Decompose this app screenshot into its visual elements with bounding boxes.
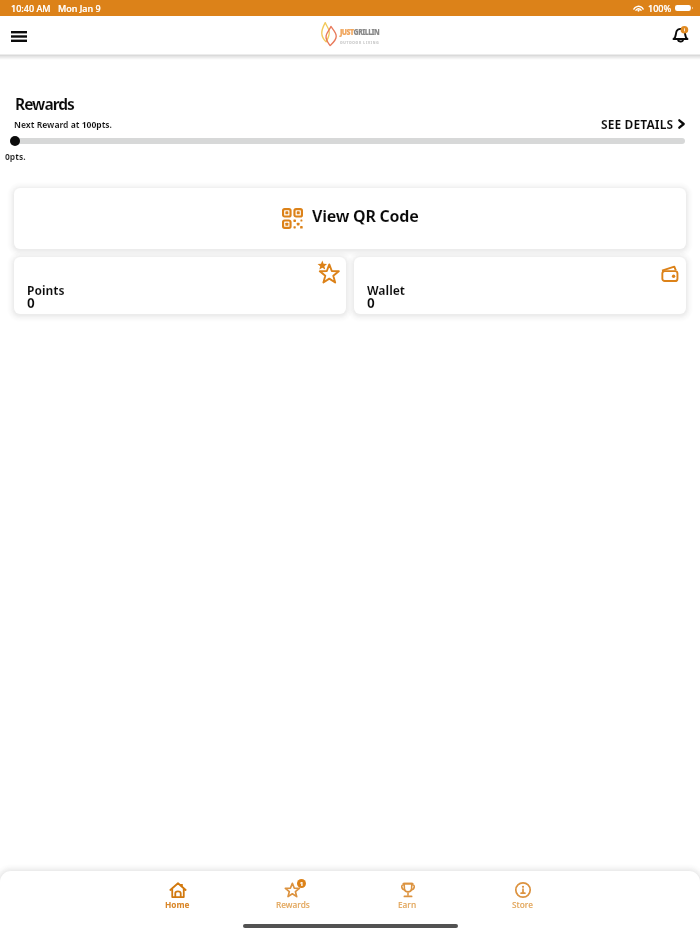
staticText: Points — [27, 282, 65, 298]
staticText: 0pts. — [5, 151, 26, 163]
staticText: Home — [165, 899, 190, 910]
staticText: JUST — [340, 26, 354, 38]
button[interactable]: SEE DETAILS — [599, 113, 687, 135]
staticText: GRILLIN — [354, 26, 380, 38]
staticText: 10:40 AM — [11, 2, 51, 14]
staticText: Rewards — [276, 899, 310, 910]
staticText: Earn — [398, 899, 417, 910]
staticText: OUTDOOR LIVING — [340, 40, 380, 45]
button[interactable]: 1 — [235, 882, 350, 910]
button[interactable]: Menu — [4, 21, 34, 51]
button[interactable]: Earn — [350, 882, 465, 910]
staticText: 100% — [648, 2, 672, 14]
button[interactable]: Notifications — [666, 22, 694, 50]
button[interactable]: View QR Code — [14, 188, 686, 249]
button[interactable]: Home — [120, 882, 235, 910]
staticText: SEE DETAILS — [601, 116, 674, 132]
staticText: 0 — [27, 294, 35, 312]
staticText: Mon Jan 9 — [58, 2, 101, 14]
staticText: Next Reward at 100pts. — [14, 119, 112, 131]
staticText: View QR Code — [312, 205, 419, 227]
button[interactable]: Wallet — [354, 257, 686, 314]
staticText: Wallet — [367, 282, 406, 298]
staticText: Store — [512, 899, 533, 910]
staticText: 0 — [367, 294, 375, 312]
button[interactable]: Points — [14, 257, 346, 314]
staticText: Rewards — [15, 93, 74, 114]
button[interactable]: Store — [465, 882, 580, 910]
staticText: 1 — [300, 880, 304, 887]
